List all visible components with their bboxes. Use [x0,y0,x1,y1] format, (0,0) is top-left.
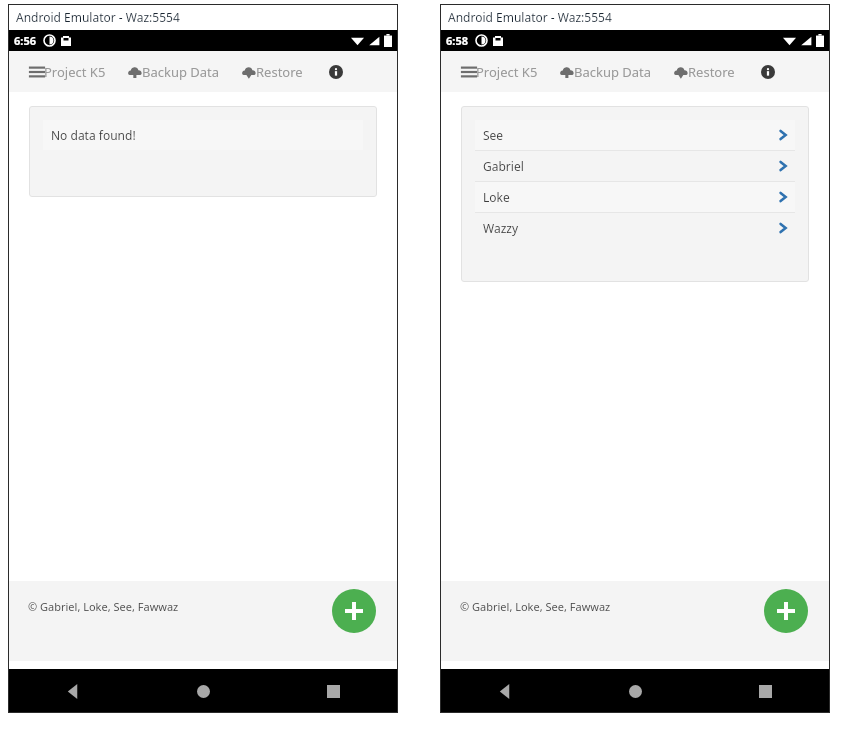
button[interactable]: No data found! [43,120,363,150]
button[interactable]: Back [440,669,570,713]
staticText: Wazzy [483,220,519,236]
staticText: Project K5 [44,63,106,81]
button[interactable]: Back [8,669,138,713]
staticText: Android Emulator - Waz:5554 [448,9,612,25]
staticText: No data found! [51,127,136,143]
staticText: Restore [688,63,735,81]
staticText: Backup Data [574,63,652,81]
button[interactable]: Home [570,669,700,713]
button[interactable]: Backup Data [560,57,652,87]
staticText: Backup Data [142,63,220,81]
staticText: See [483,127,504,143]
staticText: Restore [256,63,303,81]
button[interactable]: Info [755,59,781,85]
staticText: © Gabriel, Loke, See, Fawwaz [460,599,611,614]
staticText: 6:58 [446,33,468,48]
button[interactable]: Add [764,589,808,633]
staticText: Project K5 [476,63,538,81]
staticText: Gabriel [483,158,524,174]
staticText: Loke [483,189,510,205]
staticText: Android Emulator - Waz:5554 [16,9,180,25]
button[interactable]: Loke [475,182,795,212]
button[interactable]: Recents [268,669,398,713]
button[interactable]: Home [138,669,268,713]
button[interactable]: Restore [674,57,735,87]
button[interactable]: Info [323,59,349,85]
button[interactable]: Backup Data [128,57,220,87]
button[interactable]: Recents [700,669,830,713]
button[interactable]: See [475,120,795,150]
button[interactable]: Gabriel [475,151,795,181]
staticText: © Gabriel, Loke, See, Fawwaz [28,599,179,614]
button[interactable]: Project K5 [30,57,106,87]
button[interactable]: Wazzy [475,213,795,243]
button[interactable]: Project K5 [462,57,538,87]
staticText: 6:56 [14,33,36,48]
button[interactable]: Add [332,589,376,633]
button[interactable]: Restore [242,57,303,87]
